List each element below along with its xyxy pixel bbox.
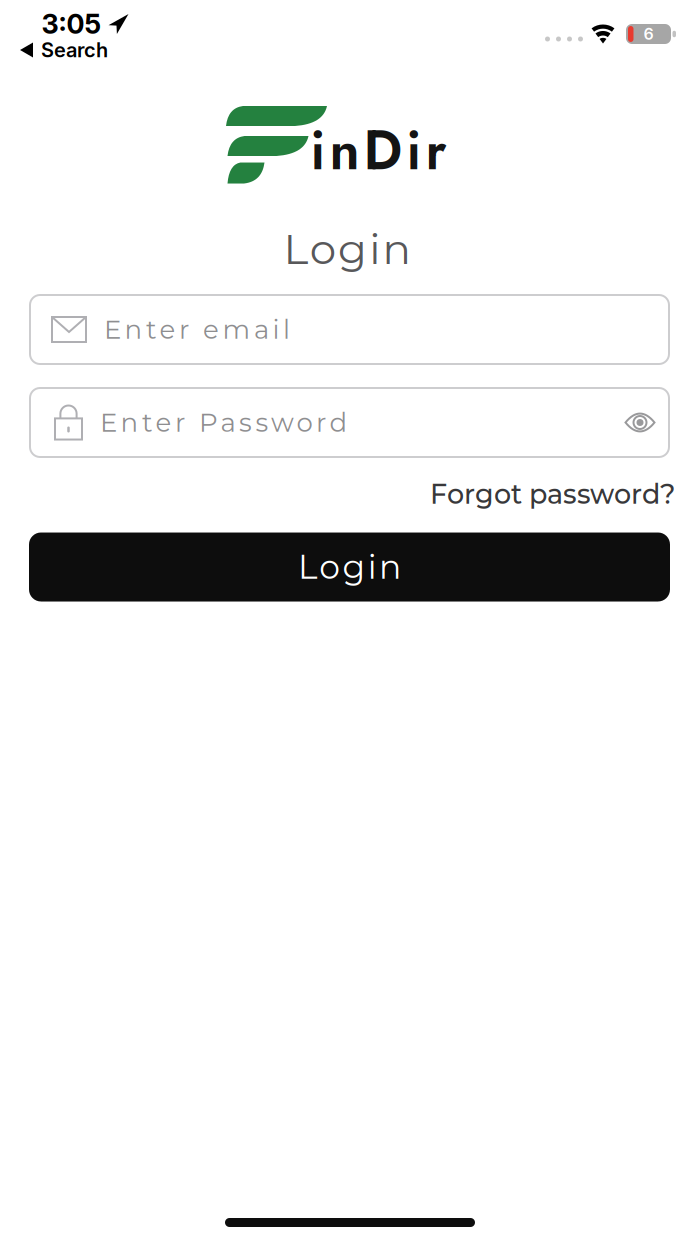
staticText: Forgot password? <box>430 477 675 510</box>
staticText: Login <box>298 547 401 587</box>
staticText: inDir <box>310 111 446 189</box>
staticText: Enter email <box>104 314 290 345</box>
staticText: Enter Password <box>100 407 347 438</box>
button[interactable] <box>622 407 658 437</box>
staticText: Login <box>283 223 410 275</box>
staticText: Search <box>41 38 108 62</box>
staticText: 3:05 <box>41 8 101 40</box>
button[interactable]: Enter email <box>29 294 670 365</box>
staticText: 6 <box>643 24 653 44</box>
button[interactable]: Forgot password? <box>430 477 675 510</box>
button[interactable]: Login <box>29 532 670 601</box>
button[interactable]: Enter Password <box>29 387 670 458</box>
button[interactable]: Search <box>20 38 108 62</box>
